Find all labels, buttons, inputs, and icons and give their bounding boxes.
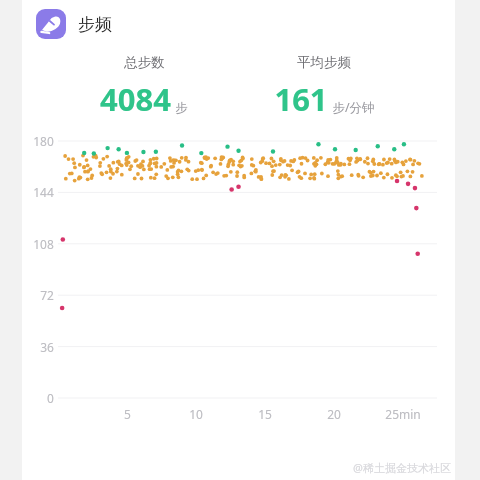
staticText: 161 — [274, 78, 328, 120]
staticText: 20 — [327, 406, 341, 422]
staticText: @稀土掘金技术社区 — [353, 460, 451, 475]
staticText: 步频 — [78, 14, 112, 35]
staticText: 步/分钟 — [332, 99, 375, 116]
button[interactable]: 步频 — [22, 0, 455, 48]
staticText: 5 — [124, 406, 131, 422]
staticText: 25min — [385, 406, 421, 422]
staticText: 108 — [33, 236, 54, 252]
other: 步频 — [36, 9, 66, 39]
staticText: 15 — [258, 406, 272, 422]
staticText: 平均步频 — [297, 54, 351, 71]
staticText: 步 — [175, 100, 188, 116]
staticText: 72 — [40, 287, 54, 303]
button[interactable]: 平均步频 — [229, 48, 419, 120]
staticText: 10 — [189, 406, 203, 422]
staticText: 4084 — [100, 78, 171, 120]
staticText: 0 — [47, 390, 54, 406]
staticText: 144 — [33, 184, 54, 200]
button[interactable]: 总步数 — [59, 48, 229, 120]
staticText: 总步数 — [124, 54, 165, 71]
staticText: 180 — [33, 133, 54, 149]
staticText: 36 — [40, 339, 54, 355]
